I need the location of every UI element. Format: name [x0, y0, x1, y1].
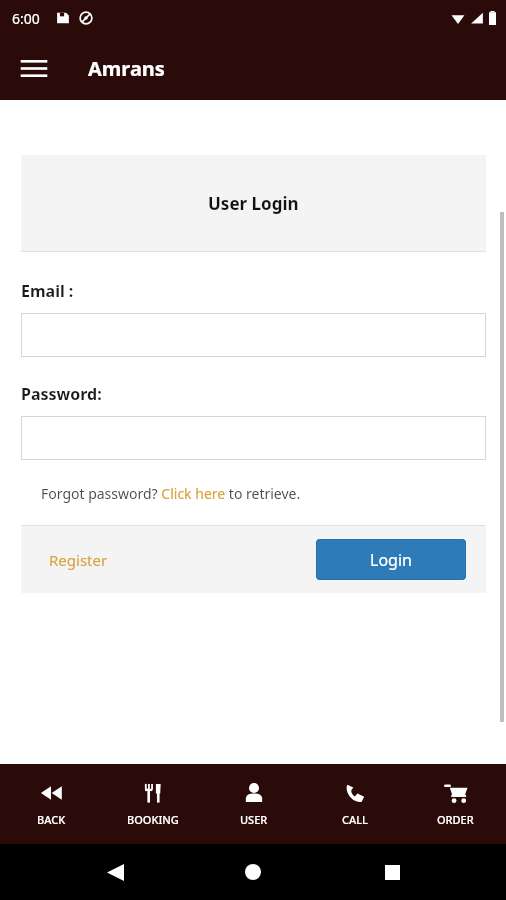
button[interactable]: BACK [0, 764, 102, 844]
button[interactable]: Open navigation menu [10, 44, 58, 92]
staticText: Email : [21, 280, 74, 302]
button[interactable]: CALL [304, 764, 405, 844]
staticText: ORDER [437, 812, 474, 827]
staticText: Register [49, 550, 108, 570]
button[interactable]: Back [91, 848, 139, 896]
button[interactable]: Recent apps [368, 848, 416, 896]
staticText: Amrans [88, 55, 165, 82]
staticText: CALL [342, 812, 368, 827]
button[interactable]: ORDER [405, 764, 506, 844]
button[interactable]: BOOKING [102, 764, 203, 844]
staticText: BACK [37, 812, 66, 827]
button[interactable]: Text input field [21, 313, 486, 357]
button[interactable]: Register [41, 544, 116, 576]
staticText: BOOKING [127, 812, 179, 827]
staticText: Login [370, 549, 412, 571]
staticText: 6:00 [12, 9, 40, 28]
button[interactable]: Home [229, 848, 277, 896]
staticText: USER [240, 812, 268, 827]
staticText: Password: [21, 383, 102, 405]
button[interactable]: Login [316, 539, 466, 580]
staticText: Forgot password? Click here to retrieve. [41, 484, 301, 503]
button[interactable]: USER [203, 764, 304, 844]
button[interactable]: Text input field [21, 416, 486, 460]
staticText: User Login [208, 192, 299, 215]
